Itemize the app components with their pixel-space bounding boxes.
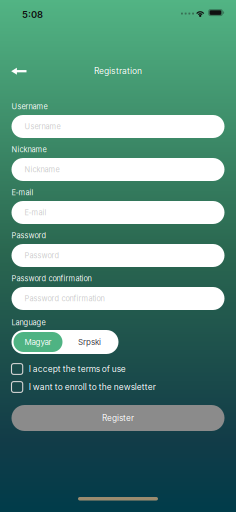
button[interactable]: E-mail	[11, 201, 224, 224]
staticText: Password confirmation	[11, 274, 91, 283]
staticText: Password	[11, 231, 46, 240]
staticText: Username	[11, 102, 47, 111]
staticText: Register	[102, 413, 134, 423]
staticText: Srpski	[78, 337, 101, 347]
staticText: I accept the terms of use	[29, 364, 126, 374]
staticText: Password confirmation	[24, 294, 104, 303]
staticText: 5:08	[22, 9, 43, 20]
staticText: E-mail	[24, 208, 46, 217]
staticText: Password	[24, 251, 59, 260]
staticText: Language	[11, 318, 45, 327]
staticText: Nickname	[11, 145, 46, 154]
staticText: Magyar	[24, 337, 51, 347]
button[interactable]: Password	[11, 244, 224, 267]
staticText: Username	[24, 122, 60, 131]
button[interactable]: Register	[11, 405, 224, 431]
button[interactable]: Magyar	[13, 332, 62, 352]
button[interactable]: I accept the terms of use	[11, 363, 224, 375]
button[interactable]: Nickname	[11, 158, 224, 181]
button[interactable]: Username	[11, 115, 224, 138]
button[interactable]: I want to enroll to the newsletter	[11, 381, 224, 393]
button[interactable]: Srpski	[62, 332, 116, 352]
staticText: Registration	[94, 66, 142, 76]
staticText: E-mail	[11, 188, 33, 197]
button[interactable]: Password confirmation	[11, 287, 224, 310]
button[interactable]: Back	[0, 58, 37, 85]
staticText: Nickname	[24, 165, 59, 174]
staticText: I want to enroll to the newsletter	[29, 382, 156, 392]
